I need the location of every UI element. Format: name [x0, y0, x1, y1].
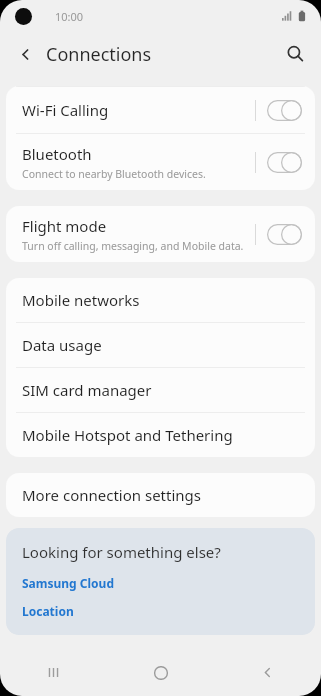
- staticText: Connect to nearby Bluetooth devices.: [22, 167, 206, 181]
- button[interactable]: Toggle: [267, 100, 302, 121]
- staticText: Looking for something else?: [22, 542, 221, 562]
- button[interactable]: Recents: [0, 649, 107, 696]
- button[interactable]: Back: [5, 34, 45, 74]
- staticText: Samsung Cloud: [22, 575, 114, 591]
- button[interactable]: More connection settings: [6, 473, 315, 517]
- button[interactable]: Toggle: [267, 152, 302, 173]
- button[interactable]: Flight mode: [6, 206, 315, 262]
- button[interactable]: Home: [107, 649, 214, 696]
- staticText: 10:00: [55, 9, 84, 24]
- button[interactable]: Samsung Cloud: [22, 575, 114, 591]
- button[interactable]: Bluetooth: [6, 134, 315, 190]
- button[interactable]: Location: [22, 603, 74, 619]
- button[interactable]: Search: [275, 34, 315, 74]
- staticText: More connection settings: [22, 485, 201, 505]
- staticText: Turn off calling, messaging, and Mobile …: [22, 239, 244, 253]
- staticText: Connections: [46, 42, 152, 67]
- staticText: Mobile networks: [22, 290, 140, 310]
- button[interactable]: Mobile Hotspot and Tethering: [6, 413, 315, 457]
- button[interactable]: Toggle: [267, 224, 302, 245]
- staticText: Mobile Hotspot and Tethering: [22, 425, 233, 445]
- button[interactable]: Data usage: [6, 323, 315, 367]
- staticText: Bluetooth: [22, 144, 92, 164]
- staticText: Wi-Fi Calling: [22, 100, 109, 120]
- button[interactable]: SIM card manager: [6, 368, 315, 412]
- button[interactable]: Wi-Fi Calling: [6, 87, 315, 133]
- button[interactable]: Mobile networks: [6, 278, 315, 322]
- staticText: Data usage: [22, 335, 102, 355]
- staticText: SIM card manager: [22, 380, 152, 400]
- staticText: Location: [22, 603, 74, 619]
- button[interactable]: Back: [214, 649, 321, 696]
- staticText: Flight mode: [22, 216, 107, 236]
